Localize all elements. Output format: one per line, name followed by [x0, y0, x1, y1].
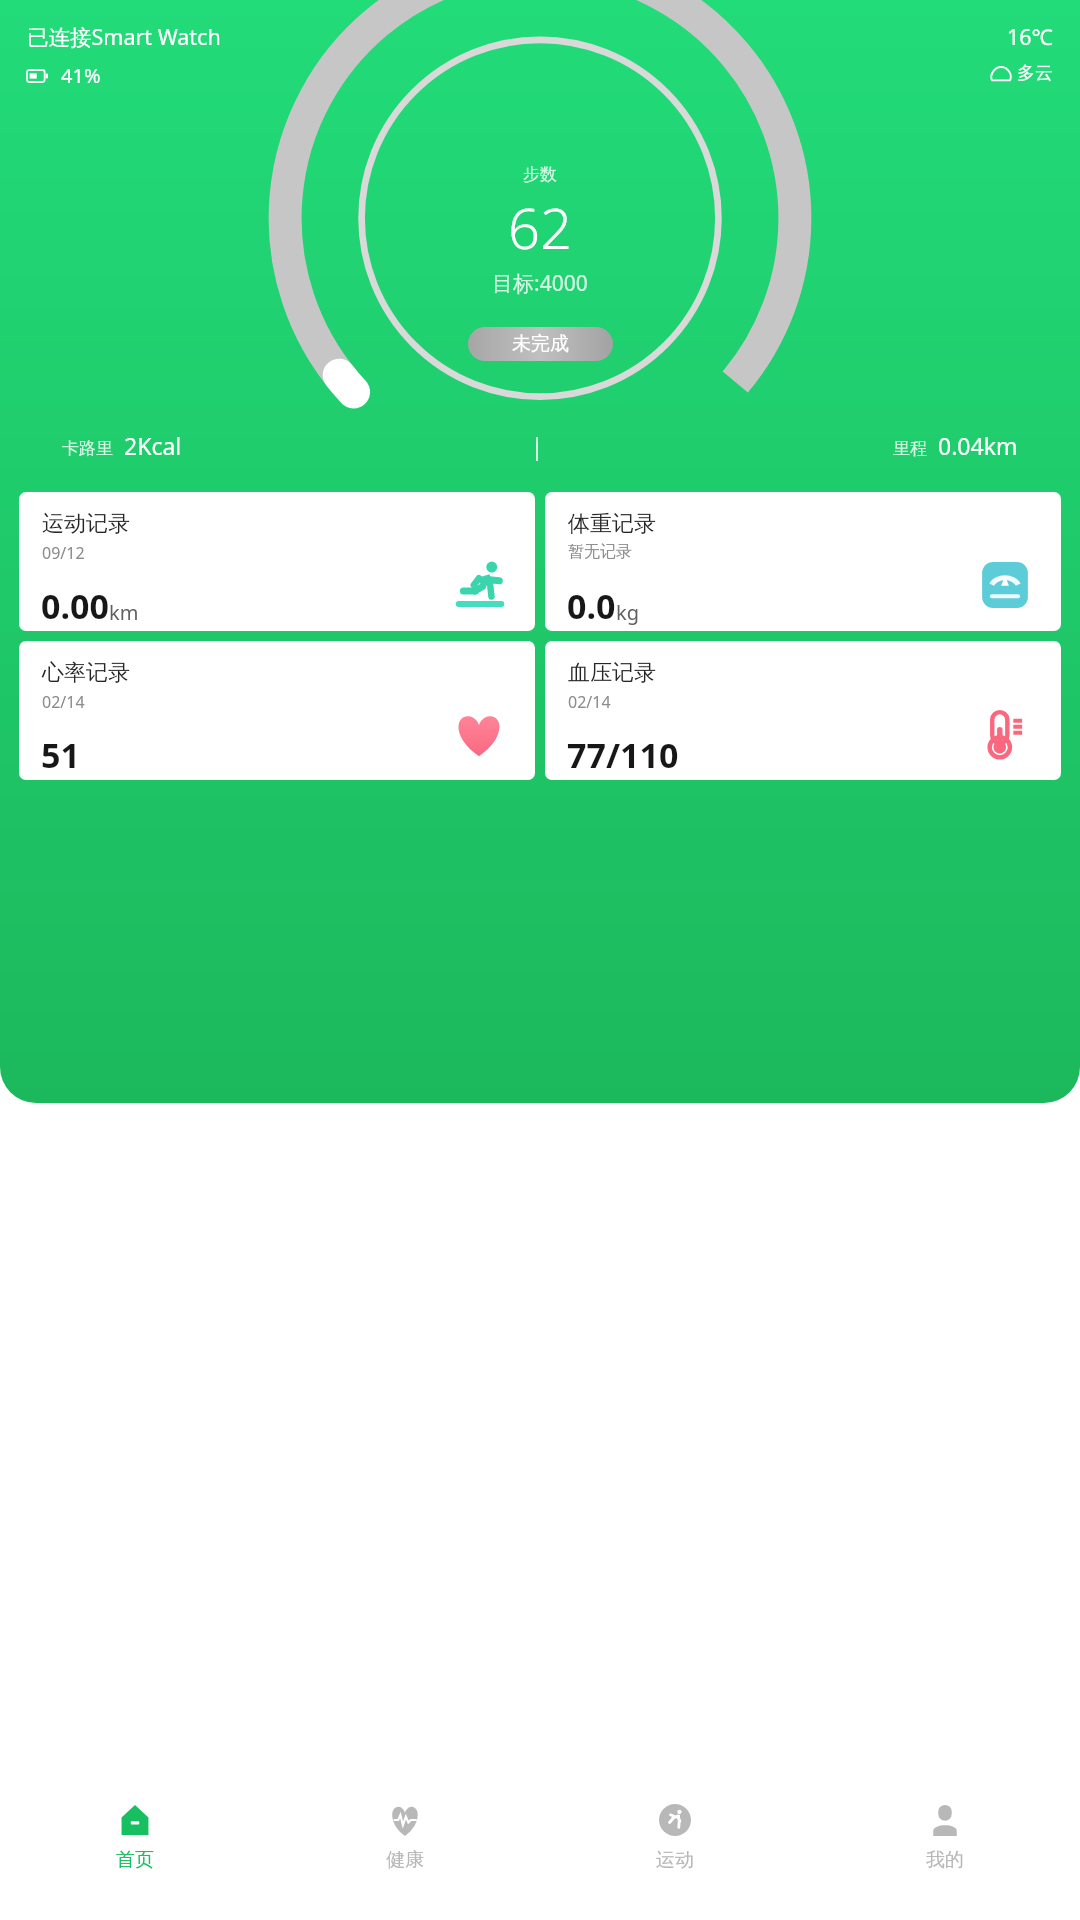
staticText: 02/14: [42, 691, 85, 713]
staticText: 51: [41, 732, 80, 778]
staticText: 62: [508, 189, 572, 265]
staticText: 未完成: [512, 332, 569, 356]
staticText: 健康: [386, 1848, 424, 1872]
staticText: 已连接Smart Watch: [27, 22, 221, 51]
staticText: 体重记录: [568, 510, 656, 538]
staticText: 2Kcal: [124, 430, 182, 461]
button[interactable]: 未完成: [468, 327, 613, 361]
button[interactable]: 心率记录: [19, 641, 535, 780]
staticText: 0.00: [41, 583, 109, 629]
staticText: 02/14: [568, 691, 611, 713]
staticText: 里程: [893, 438, 927, 459]
button[interactable]: 血压记录: [545, 641, 1061, 780]
staticText: 首页: [116, 1848, 154, 1872]
staticText: 0.04km: [938, 430, 1018, 461]
button[interactable]: 运动记录: [19, 492, 535, 631]
staticText: kg: [616, 599, 639, 626]
staticText: 09/12: [42, 542, 85, 564]
staticText: 16℃: [1007, 22, 1053, 51]
staticText: 血压记录: [568, 659, 656, 687]
staticText: 0.0: [567, 583, 616, 629]
button[interactable]: Health: [270, 1775, 540, 1920]
button[interactable]: Home: [0, 1775, 270, 1920]
button[interactable]: Sport: [540, 1775, 810, 1920]
staticText: 卡路里: [62, 438, 113, 459]
staticText: 心率记录: [42, 659, 130, 687]
staticText: 41%: [61, 62, 101, 89]
staticText: 目标:4000: [492, 269, 588, 298]
staticText: 暂无记录: [568, 542, 632, 562]
staticText: 多云: [1017, 62, 1053, 85]
button[interactable]: 体重记录: [545, 492, 1061, 631]
staticText: km: [109, 599, 139, 626]
staticText: 运动: [656, 1848, 694, 1872]
staticText: 77/110: [567, 732, 679, 778]
staticText: 我的: [926, 1848, 964, 1872]
staticText: 运动记录: [42, 510, 130, 538]
button[interactable]: Profile: [810, 1775, 1080, 1920]
staticText: 步数: [523, 164, 557, 185]
